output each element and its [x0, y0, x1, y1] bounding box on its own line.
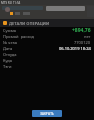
staticText: 7700120 — [74, 40, 91, 45]
button[interactable]: № чека — [0, 39, 94, 45]
button[interactable]: Тэги — [0, 63, 94, 69]
staticText: Дата — [3, 46, 13, 51]
staticText: ЗАКРЫТЬ — [40, 112, 54, 116]
staticText: 06.10.2019 18:24 — [59, 46, 91, 51]
button[interactable]: ДЕТАЛИ ОПЕРАЦИИ — [0, 19, 94, 27]
button[interactable]: Сумма — [0, 27, 94, 33]
staticText: № чека — [3, 40, 17, 45]
staticText: Откуда — [3, 52, 17, 57]
button[interactable]: Куда — [0, 57, 94, 63]
staticText: ДЕТАЛИ ОПЕРАЦИИ — [9, 21, 50, 26]
button[interactable]: Дата — [0, 45, 94, 51]
staticText: Прямой расход — [3, 34, 34, 39]
button[interactable]: ЗАКРЫТЬ — [32, 110, 62, 117]
staticText: +894,76 — [72, 27, 91, 33]
staticText: Тэги — [3, 64, 12, 69]
button[interactable]: Откуда — [0, 51, 94, 57]
staticText: нет — [84, 34, 91, 39]
button[interactable]: Прямой расход — [0, 33, 94, 39]
staticText: Куда — [3, 58, 12, 63]
staticText: Сумма — [3, 28, 16, 33]
staticText: MTS RU 11:54 — [1, 1, 21, 5]
